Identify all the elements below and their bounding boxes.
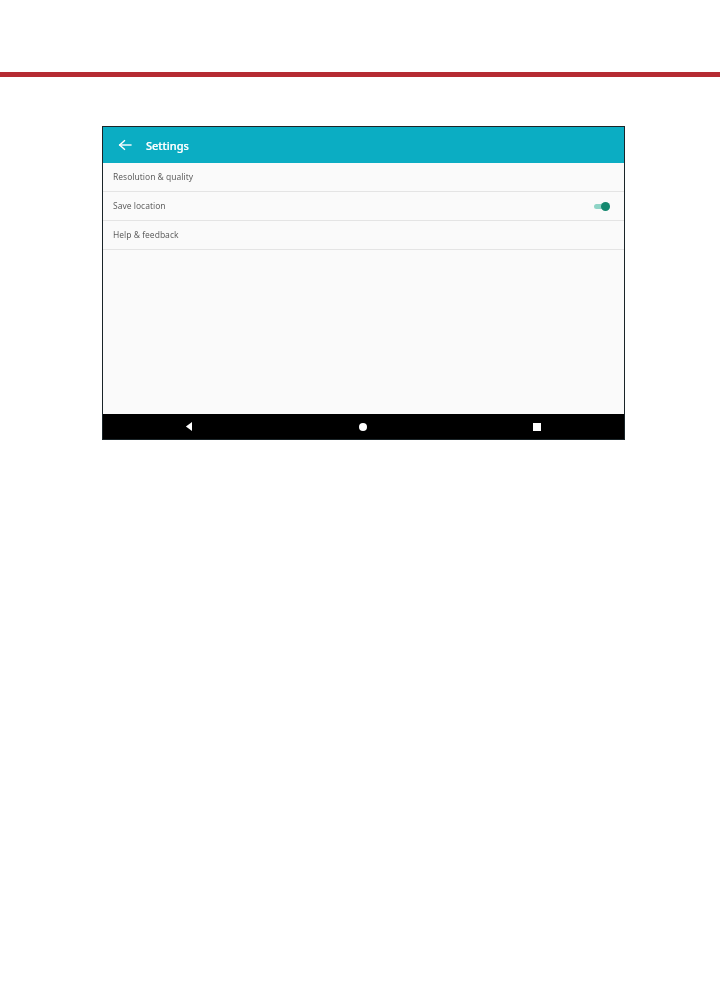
staticText: Help & feedback: [113, 229, 179, 241]
button[interactable]: Home: [276, 414, 450, 439]
button[interactable]: Back: [112, 132, 138, 158]
button[interactable]: Recent apps: [450, 414, 624, 439]
button[interactable]: Save location: [103, 192, 624, 220]
staticText: Save location: [113, 200, 166, 212]
staticText: Resolution & quality: [113, 171, 194, 183]
staticText: Settings: [146, 138, 189, 153]
button[interactable]: Back: [103, 414, 276, 439]
button[interactable]: Resolution & quality: [103, 163, 624, 191]
other: Save location toggle: [592, 199, 612, 213]
button[interactable]: Help & feedback: [103, 221, 624, 249]
